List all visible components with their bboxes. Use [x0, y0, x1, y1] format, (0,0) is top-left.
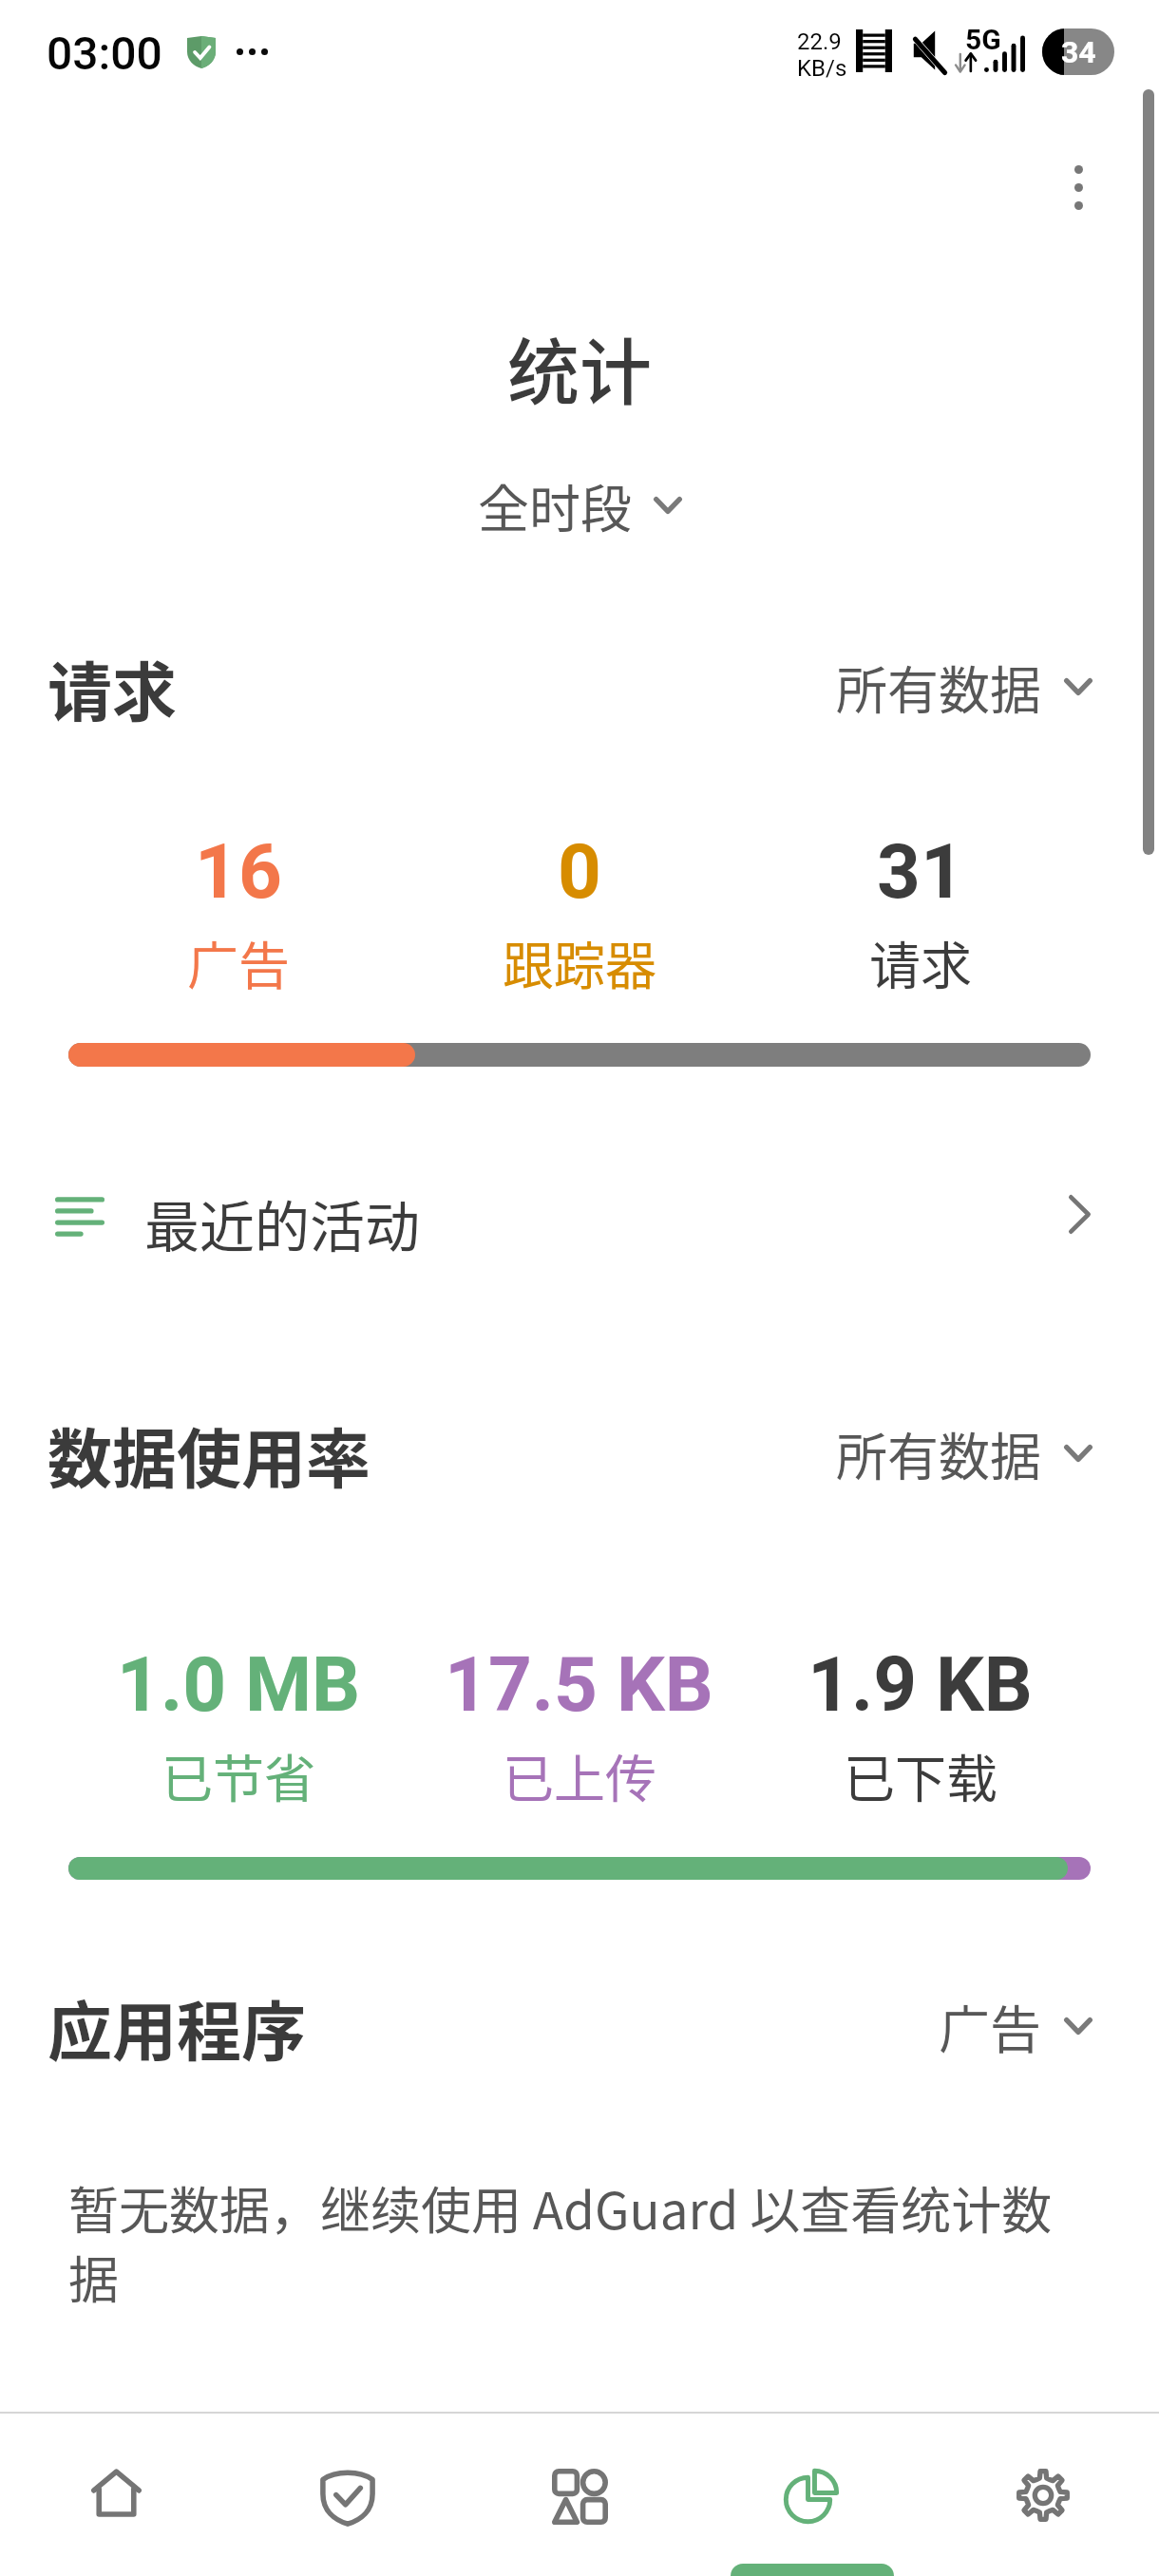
button[interactable]: Settings: [927, 2414, 1159, 2576]
button[interactable]: Home: [0, 2414, 232, 2576]
staticText: 03:00: [47, 27, 162, 80]
staticText: 暂无数据，继续使用 AdGuard 以查看统计数据: [68, 2171, 1091, 2314]
staticText: 已节省: [161, 1738, 315, 1812]
staticText: 统计: [0, 315, 1159, 420]
button[interactable]: 最近的活动: [0, 1165, 1159, 1281]
staticText: 全时段: [478, 468, 632, 542]
staticText: 数据使用率: [47, 1408, 371, 1499]
staticText: 0: [558, 827, 601, 917]
staticText: 广告: [939, 1989, 1041, 2063]
staticText: 所有数据: [836, 650, 1041, 724]
button[interactable]: 所有数据: [826, 1409, 1102, 1498]
staticText: 最近的活动: [144, 1184, 421, 1263]
staticText: 请求: [47, 641, 178, 732]
staticText: 应用程序: [47, 1980, 307, 2072]
button[interactable]: 所有数据: [826, 642, 1102, 731]
staticText: 请求: [869, 925, 972, 999]
staticText: 16: [195, 827, 282, 917]
button[interactable]: Statistics: [695, 2414, 927, 2576]
staticText: 5G: [965, 23, 1001, 56]
staticText: 所有数据: [836, 1416, 1041, 1490]
staticText: 广告: [187, 925, 290, 999]
staticText: 1.9 KB: [807, 1640, 1033, 1730]
button[interactable]: 全时段: [468, 463, 692, 548]
staticText: 已下载: [844, 1738, 997, 1812]
button[interactable]: 广告: [929, 1981, 1102, 2071]
staticText: 17.5 KB: [445, 1640, 713, 1730]
button[interactable]: Protection: [232, 2414, 464, 2576]
staticText: 已上传: [503, 1738, 656, 1812]
staticText: 1.0 MB: [117, 1640, 361, 1730]
staticText: KB/s: [797, 55, 847, 82]
staticText: 22.9: [797, 28, 842, 55]
button[interactable]: Apps: [464, 2414, 695, 2576]
staticText: 跟踪器: [503, 925, 656, 999]
staticText: 34: [1061, 34, 1096, 70]
button[interactable]: More options: [1029, 138, 1129, 237]
staticText: 31: [877, 827, 964, 917]
